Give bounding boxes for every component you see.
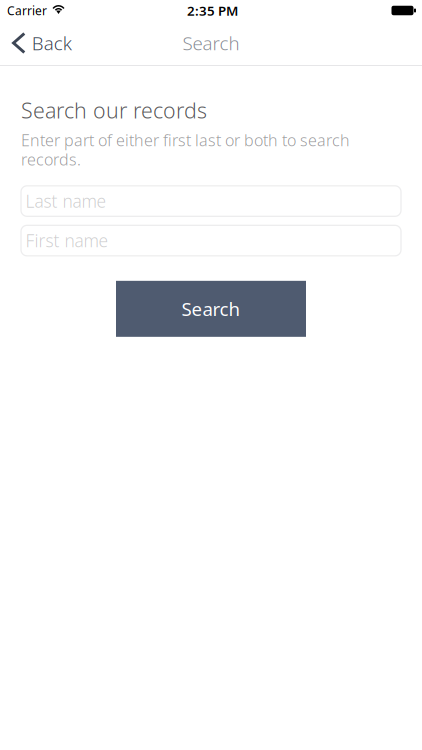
staticText: Last name [25, 190, 106, 213]
button[interactable]: Back [0, 24, 82, 62]
staticText: Search [181, 296, 240, 321]
staticText: Carrier [7, 2, 47, 18]
button[interactable]: First name [21, 225, 401, 256]
staticText: Search our records [21, 96, 207, 124]
button[interactable]: Search [116, 281, 306, 337]
staticText: 2:35 PM [187, 2, 238, 19]
staticText: Enter part of either first last or both … [21, 129, 350, 170]
button[interactable]: Last name [21, 186, 401, 216]
staticText: First name [25, 229, 108, 252]
staticText: Back [32, 31, 72, 55]
staticText: Search [182, 31, 239, 55]
